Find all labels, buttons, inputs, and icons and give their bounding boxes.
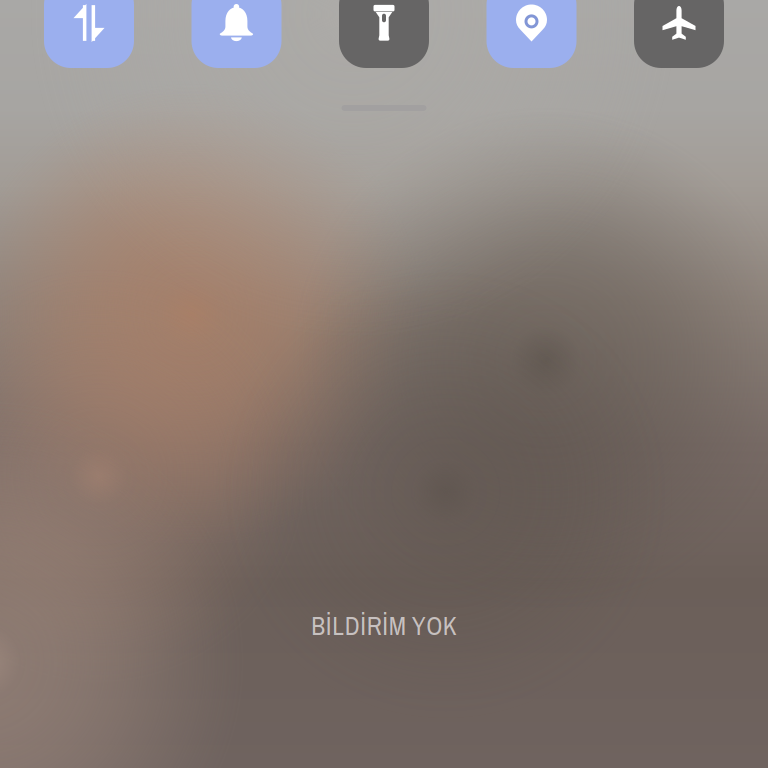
button[interactable]: Location <box>486 0 576 68</box>
staticText: BİLDİRİM YOK <box>311 609 457 643</box>
button[interactable]: Flashlight <box>339 0 429 68</box>
button[interactable]: Airplane mode <box>634 0 724 68</box>
button[interactable]: Ringer <box>191 0 281 68</box>
button[interactable]: Mobile data <box>44 0 134 68</box>
